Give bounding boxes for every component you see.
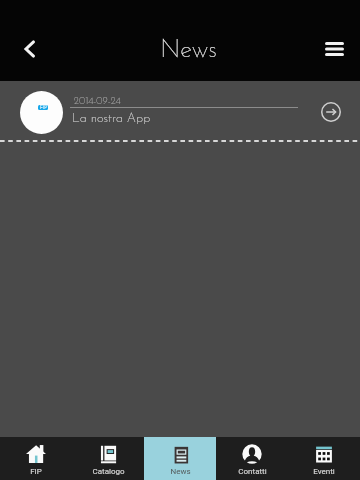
staticText: Catalogo	[92, 467, 125, 476]
button[interactable]: Contatti	[216, 437, 288, 480]
staticText: 2014-09-24	[74, 96, 121, 106]
staticText: FIP	[40, 105, 47, 110]
button[interactable]: Eventi	[288, 437, 360, 480]
button[interactable]: Open	[311, 92, 351, 132]
button[interactable]: Menu	[310, 31, 358, 67]
button[interactable]: News	[144, 437, 216, 480]
staticText: News	[160, 38, 217, 63]
button[interactable]: FIP	[0, 437, 72, 480]
staticText: Eventi	[313, 467, 335, 476]
staticText: News	[170, 467, 191, 476]
staticText: La nostra App	[72, 112, 151, 125]
button[interactable]: FIP	[0, 81, 360, 142]
staticText: Contatti	[238, 467, 267, 476]
button[interactable]: Catalogo	[72, 437, 144, 480]
staticText: FIP	[30, 467, 42, 476]
button[interactable]: Back	[6, 31, 52, 67]
